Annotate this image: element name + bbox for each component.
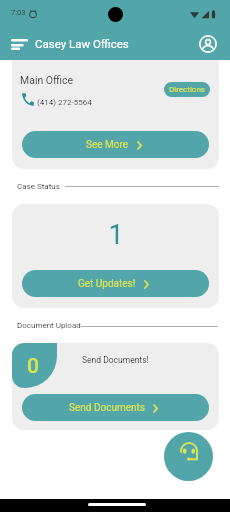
button[interactable]: See More [22, 131, 209, 158]
staticText: See More [86, 139, 129, 151]
staticText: Casey Law Offices [35, 37, 129, 50]
staticText: Send Documents! [82, 355, 149, 365]
staticText: Get Updates! [78, 278, 136, 290]
staticText: (414) 272-5564 [37, 98, 92, 107]
staticText: Main Office [20, 74, 74, 86]
staticText: 0 [27, 354, 39, 379]
button[interactable]: Send Documents [22, 394, 209, 421]
button[interactable]: Get Updates! [22, 270, 209, 297]
button[interactable]: Contact support [164, 432, 213, 481]
button[interactable]: Account [196, 32, 220, 56]
staticText: Directions [169, 85, 205, 94]
staticText: 1 [108, 219, 124, 251]
staticText: Send Documents [69, 402, 145, 414]
staticText: Document Upload [17, 321, 81, 330]
staticText: Case Status [17, 182, 60, 191]
button[interactable]: Directions [164, 82, 210, 97]
staticText: 7:03 [11, 8, 26, 17]
button[interactable]: Open navigation menu [4, 32, 34, 56]
